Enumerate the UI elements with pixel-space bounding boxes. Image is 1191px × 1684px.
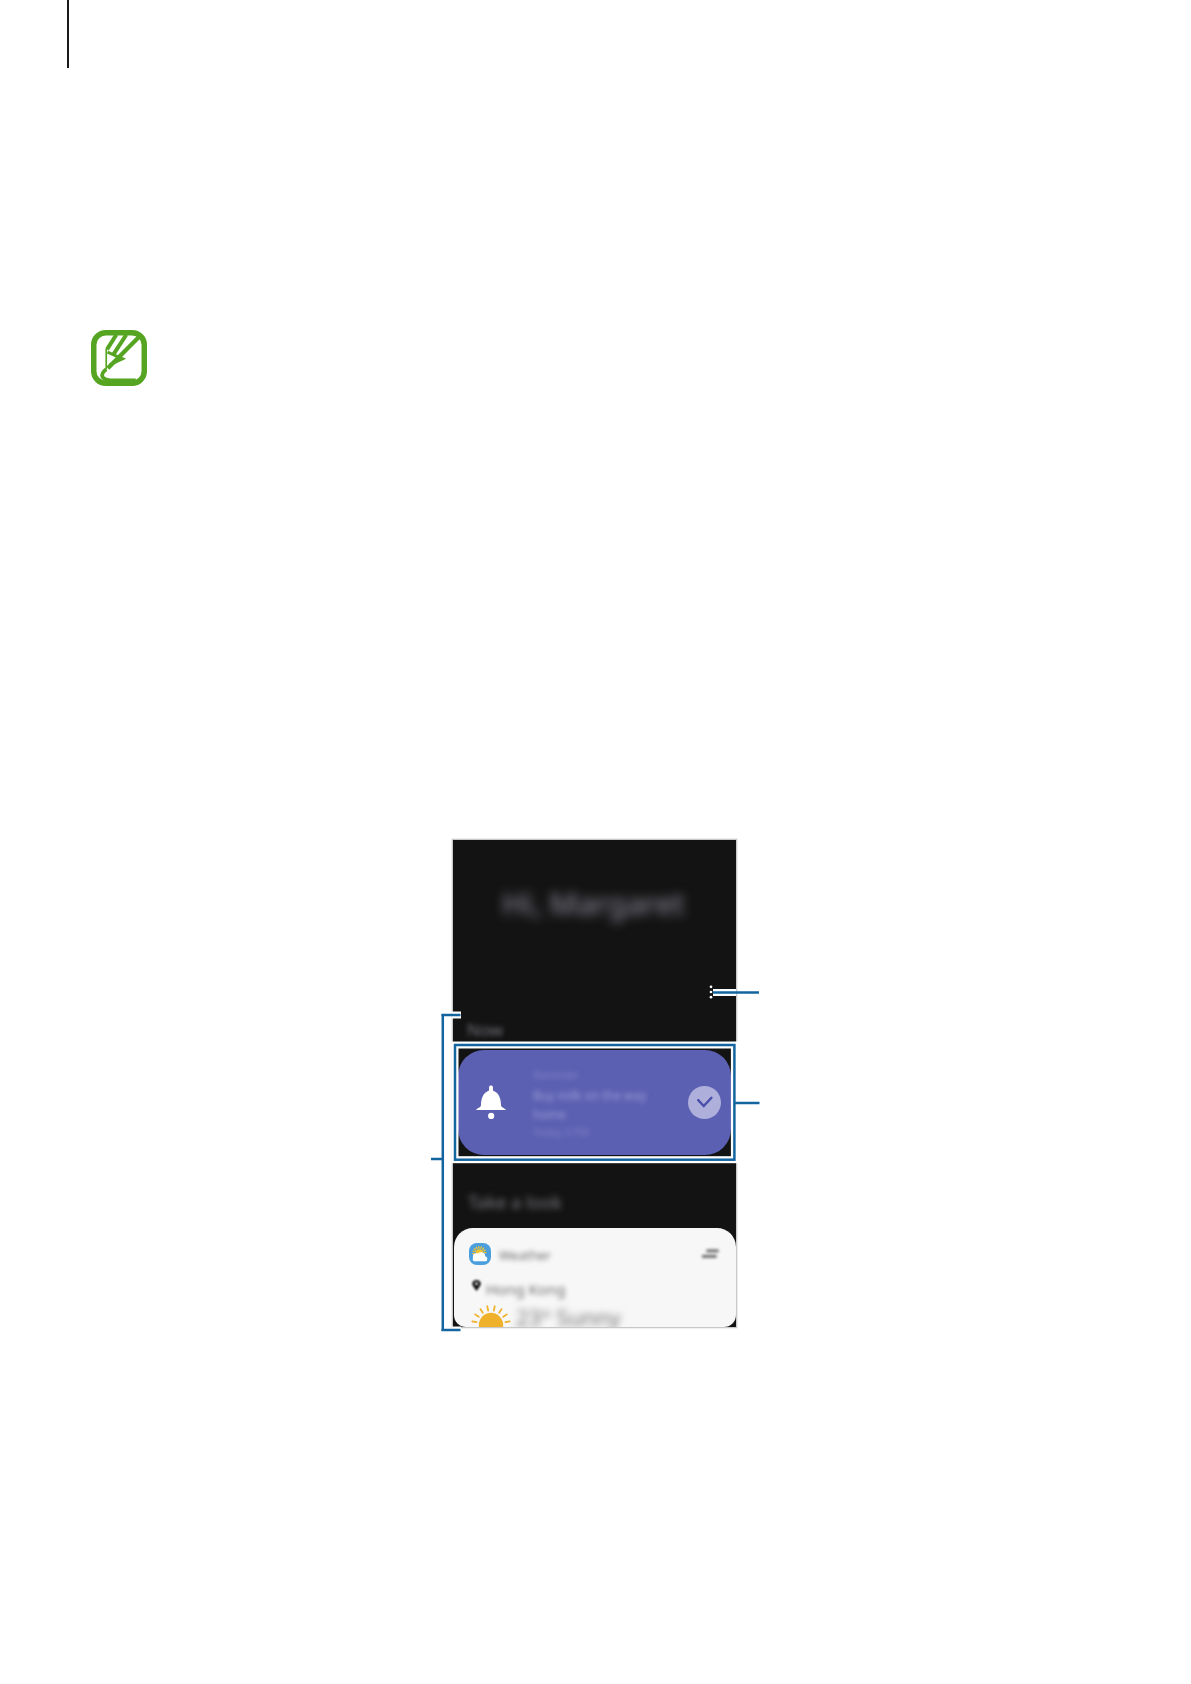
staticText: Take a look bbox=[468, 1190, 562, 1215]
staticText: 23° Sunny bbox=[516, 1302, 621, 1327]
staticText: Hong Kong bbox=[486, 1279, 566, 1299]
staticText: Weather bbox=[499, 1246, 551, 1264]
button[interactable]: Mark reminder complete bbox=[688, 1086, 721, 1119]
button[interactable]: Reminder bbox=[458, 1050, 731, 1155]
button[interactable]: Weather card options bbox=[702, 1246, 720, 1264]
staticText: home bbox=[533, 1106, 566, 1122]
staticText: Hi, Margaret bbox=[502, 882, 685, 924]
staticText: Buy milk on the way bbox=[533, 1087, 647, 1103]
staticText: Reminder bbox=[533, 1068, 579, 1082]
button[interactable]: Weather bbox=[454, 1228, 736, 1327]
button[interactable]: More options bbox=[699, 980, 723, 1004]
staticText: Now bbox=[467, 1018, 504, 1041]
